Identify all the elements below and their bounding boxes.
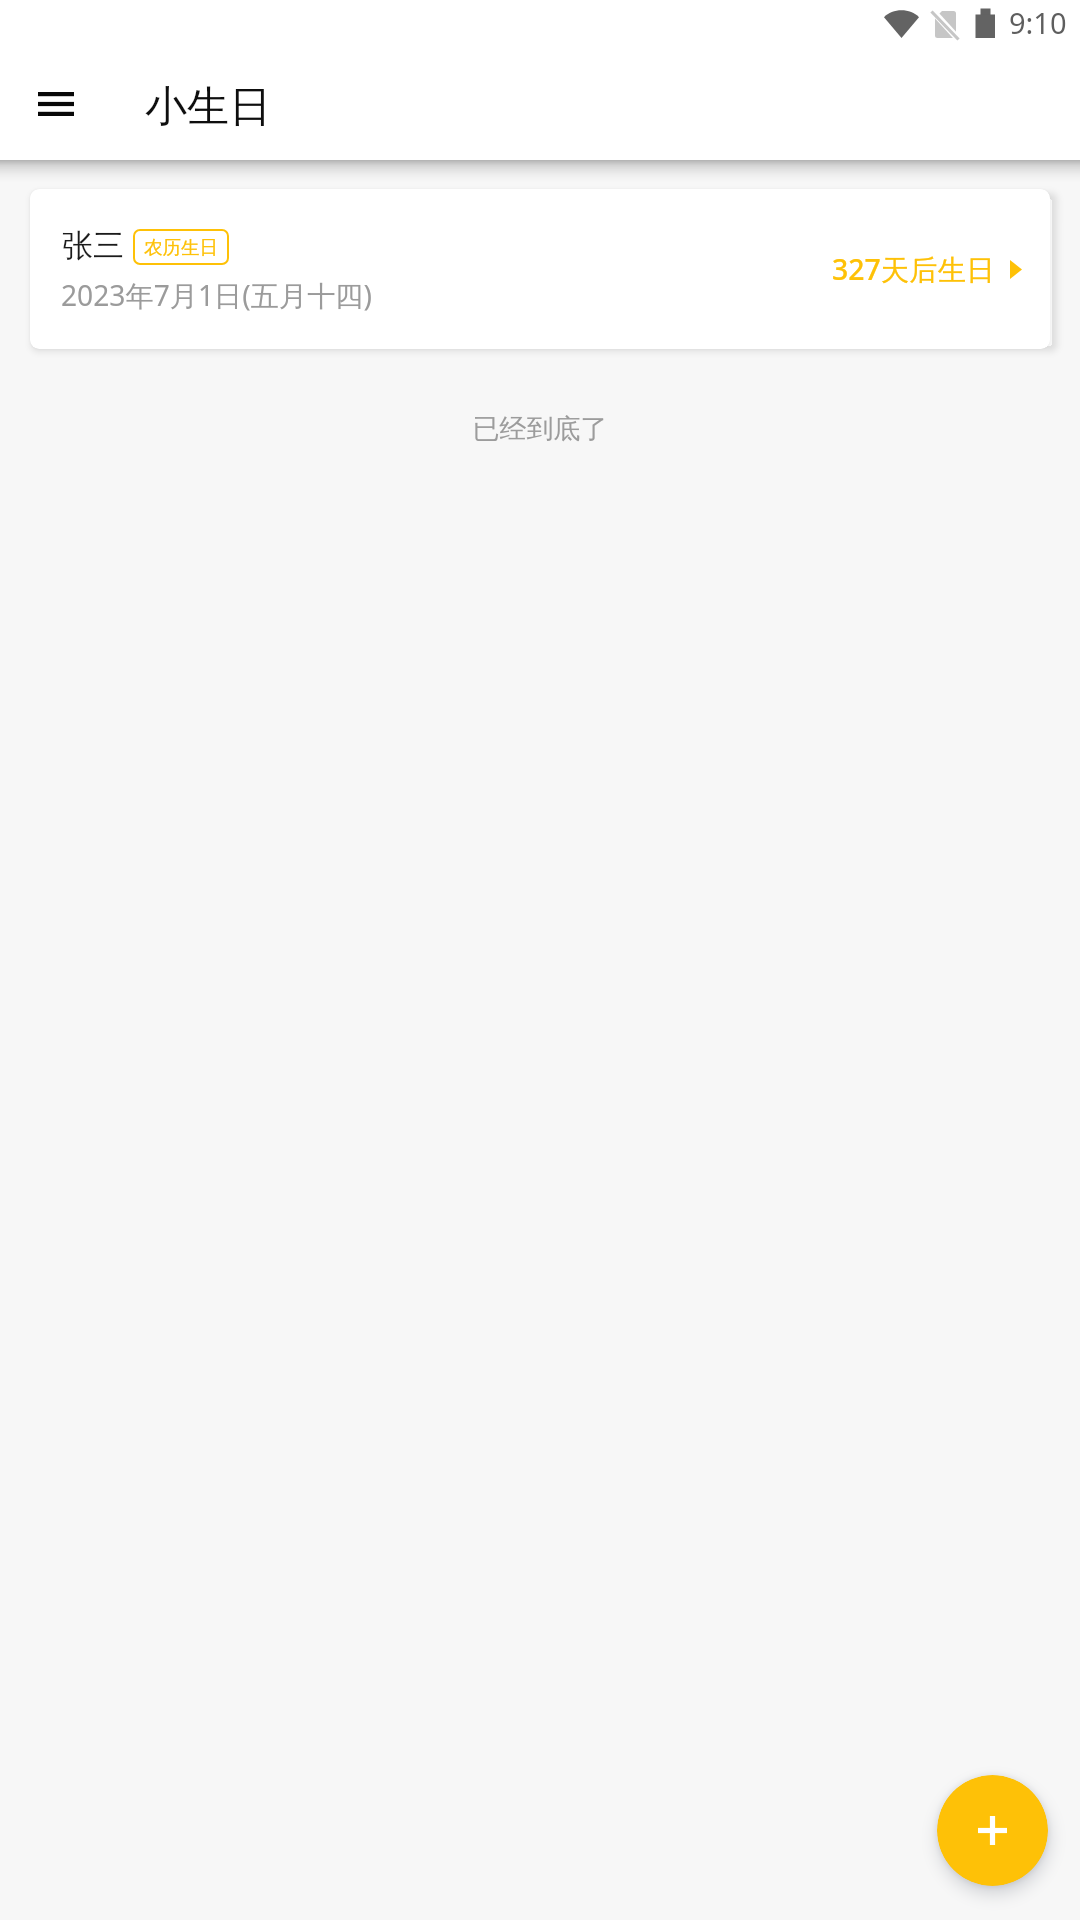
button[interactable]: 张三: [30, 189, 1050, 349]
staticText: 9:10: [1009, 3, 1067, 42]
button[interactable]: Add birthday: [937, 1775, 1048, 1886]
staticText: 小生日: [145, 81, 271, 134]
staticText: 2023年7月1日(五月十四): [61, 276, 372, 315]
staticText: 农历生日: [144, 236, 218, 259]
button[interactable]: 327天后生日: [832, 250, 1050, 289]
staticText: 张三: [62, 226, 124, 265]
staticText: 327天后生日: [832, 250, 995, 289]
button[interactable]: Open navigation menu: [20, 68, 92, 140]
staticText: 已经到底了: [0, 412, 1080, 446]
